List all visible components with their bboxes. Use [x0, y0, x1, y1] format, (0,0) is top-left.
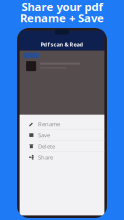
button[interactable]: Share [20, 152, 104, 163]
button[interactable]: Save [20, 130, 104, 141]
button[interactable]: Delete [20, 141, 104, 152]
staticText: Share [38, 153, 53, 161]
staticText: Rename + Save [20, 10, 104, 26]
button[interactable]: Rename [20, 119, 104, 130]
staticText: Pdf scan & Read [40, 40, 83, 48]
staticText: Save [38, 131, 50, 139]
staticText: Share your pdf [21, 0, 102, 14]
staticText: Delete [38, 142, 55, 150]
staticText: Rename [38, 120, 60, 128]
